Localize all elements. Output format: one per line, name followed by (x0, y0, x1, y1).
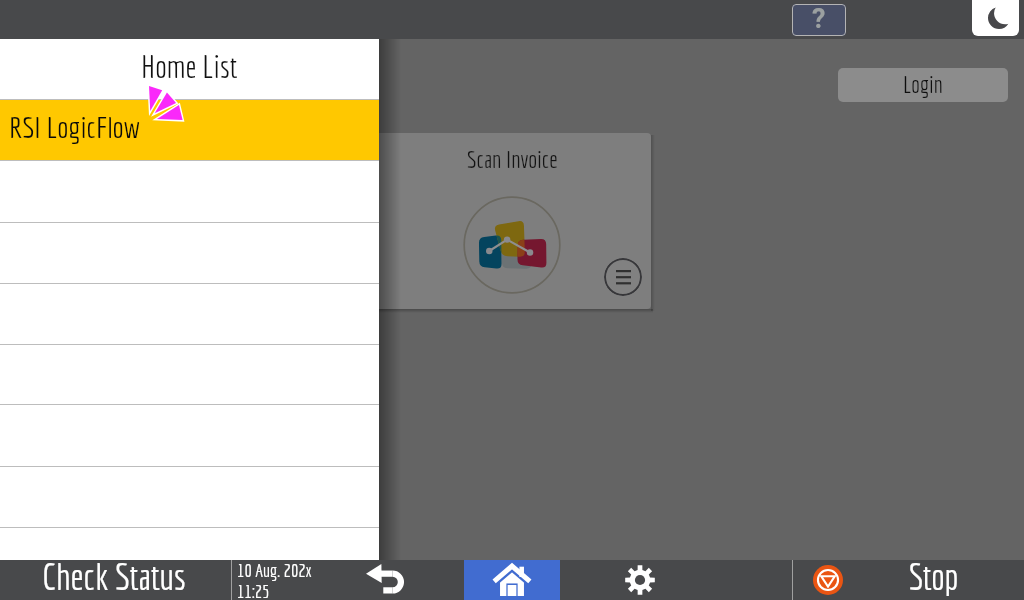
button[interactable]: Back (330, 560, 440, 600)
staticText: Scan Invoice (467, 145, 558, 173)
staticText: Home List (141, 49, 238, 85)
button[interactable]: Help (792, 4, 846, 36)
button[interactable]: Menu (604, 258, 642, 296)
button[interactable]: Home List (0, 39, 379, 99)
staticText: RSI LogicFlow (9, 110, 140, 144)
staticText: ? (812, 4, 826, 35)
button[interactable]: Settings (560, 560, 792, 600)
staticText: Login (903, 71, 943, 97)
button[interactable]: Scan Invoice (374, 133, 651, 309)
button[interactable]: Login (838, 68, 1008, 102)
staticText: Stop (909, 556, 959, 596)
staticText: 11:25 (237, 581, 270, 600)
button[interactable]: RSI LogicFlow (0, 100, 379, 160)
button[interactable]: Night mode (972, 0, 1019, 36)
button[interactable]: Stop (793, 560, 1024, 600)
staticText: Check Status (42, 555, 187, 595)
button[interactable]: Home (464, 560, 560, 600)
staticText: 10 Aug. 202x (237, 560, 312, 581)
button[interactable]: Check Status (0, 560, 231, 600)
